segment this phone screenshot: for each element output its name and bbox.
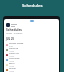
staticText: Stand up bbox=[9, 47, 19, 50]
staticText: Dinner bbox=[9, 67, 17, 70]
button[interactable] bbox=[6, 23, 57, 27]
staticText: 15:00 bbox=[9, 60, 15, 62]
staticText: Today . 4 events bbox=[6, 32, 23, 35]
button[interactable]: Workshop bbox=[6, 57, 57, 62]
staticText: Retro bbox=[9, 62, 15, 65]
button[interactable]: Retro bbox=[6, 62, 57, 67]
staticText: 10:30 bbox=[9, 50, 15, 52]
staticText: JUL 25 bbox=[6, 37, 14, 41]
button[interactable]: Stand up bbox=[6, 47, 57, 52]
button[interactable]: Dinner bbox=[6, 67, 57, 72]
staticText: Schedules bbox=[6, 28, 22, 32]
button[interactable]: Client call bbox=[6, 52, 57, 57]
staticText: 19:00 bbox=[9, 70, 15, 72]
staticText: 13:00 bbox=[9, 55, 15, 57]
staticText: 9:00 bbox=[9, 45, 13, 47]
button[interactable]: Design review bbox=[6, 42, 57, 47]
staticText: Client call bbox=[9, 52, 19, 55]
staticText: Design review bbox=[9, 42, 24, 45]
staticText: 16:30 bbox=[9, 65, 15, 67]
staticText: Workshop bbox=[9, 57, 20, 60]
staticText: Schedules bbox=[22, 3, 43, 9]
